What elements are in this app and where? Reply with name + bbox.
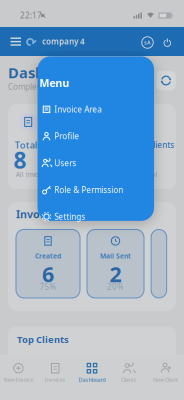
staticText: All invoices total (16, 170, 67, 179)
staticText: Clients (121, 376, 137, 383)
button[interactable]: Role & Permission (42, 176, 154, 203)
staticText: sA (144, 39, 151, 46)
staticText: 75% (39, 281, 56, 292)
staticText: Role & Permission (54, 184, 123, 195)
staticText: Total Active Clients (102, 140, 174, 150)
staticText: 22:17 (20, 10, 42, 21)
staticText: Mail Sent (100, 251, 131, 260)
staticText: Settings (54, 211, 85, 222)
staticText: Profile (54, 131, 79, 141)
staticText: All clients in total (103, 170, 157, 179)
staticText: 2 (109, 260, 121, 288)
staticText: Total Invoices (15, 139, 78, 151)
staticText: 8 (13, 145, 26, 175)
staticText: Created (35, 251, 61, 260)
button[interactable]: Invoices (37, 358, 74, 388)
staticText: Invoices (16, 207, 60, 221)
staticText: Menu (39, 76, 69, 90)
button[interactable]: Invoice Area (42, 96, 154, 123)
button[interactable]: Users (42, 150, 154, 176)
staticText: Dashboard (8, 63, 87, 82)
button[interactable]: Log out (161, 36, 173, 48)
staticText: Dashboard (78, 376, 105, 383)
button[interactable]: Settings (42, 203, 154, 230)
button[interactable]: Account (141, 36, 154, 49)
staticText: Top Clients (17, 333, 69, 346)
staticText: 6 (42, 260, 54, 288)
staticText: 20% (107, 281, 124, 292)
button[interactable]: Menu (8, 33, 24, 49)
staticText: Complete overview of your invoices (8, 81, 142, 92)
button[interactable]: New Client (147, 358, 184, 388)
button[interactable]: Dashboard (74, 358, 110, 388)
staticText: Invoice Area (54, 104, 101, 115)
button[interactable]: Profile (42, 123, 154, 150)
staticText: Invoices (45, 376, 66, 383)
staticText: Users (54, 158, 76, 168)
button[interactable]: New Invoice (0, 358, 37, 388)
button[interactable]: Refresh (156, 71, 176, 90)
button[interactable]: Clients (110, 358, 147, 388)
staticText: company 4 (42, 36, 85, 47)
staticText: New Invoice (3, 376, 33, 383)
staticText: New Client (153, 376, 178, 383)
